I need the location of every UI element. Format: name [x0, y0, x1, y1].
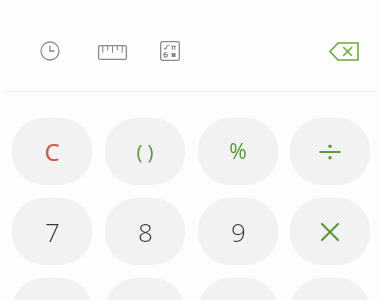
button[interactable]: Unit converter	[97, 37, 127, 67]
button[interactable]: −	[290, 278, 370, 300]
button[interactable]: 9	[198, 198, 278, 265]
button[interactable]: 4	[12, 278, 92, 300]
staticText: 8	[138, 214, 153, 249]
staticText: 7	[45, 214, 60, 249]
button[interactable]: C	[12, 118, 92, 185]
button[interactable]: 7	[12, 198, 92, 265]
button[interactable]: 6	[198, 278, 278, 300]
button[interactable]: 5	[105, 278, 185, 300]
button[interactable]: Delete	[326, 37, 362, 65]
staticText: 9	[231, 214, 246, 249]
staticText: %	[229, 137, 247, 166]
staticText: ( )	[136, 138, 154, 165]
button[interactable]: History	[36, 37, 64, 65]
staticText: C	[44, 135, 60, 168]
button[interactable]: %	[198, 118, 278, 185]
button[interactable]: Scientific constants	[156, 37, 184, 65]
button[interactable]: ( )	[105, 118, 185, 185]
button[interactable]: Multiply	[290, 198, 370, 265]
button[interactable]: Divide	[290, 118, 370, 185]
button[interactable]: 8	[105, 198, 185, 265]
